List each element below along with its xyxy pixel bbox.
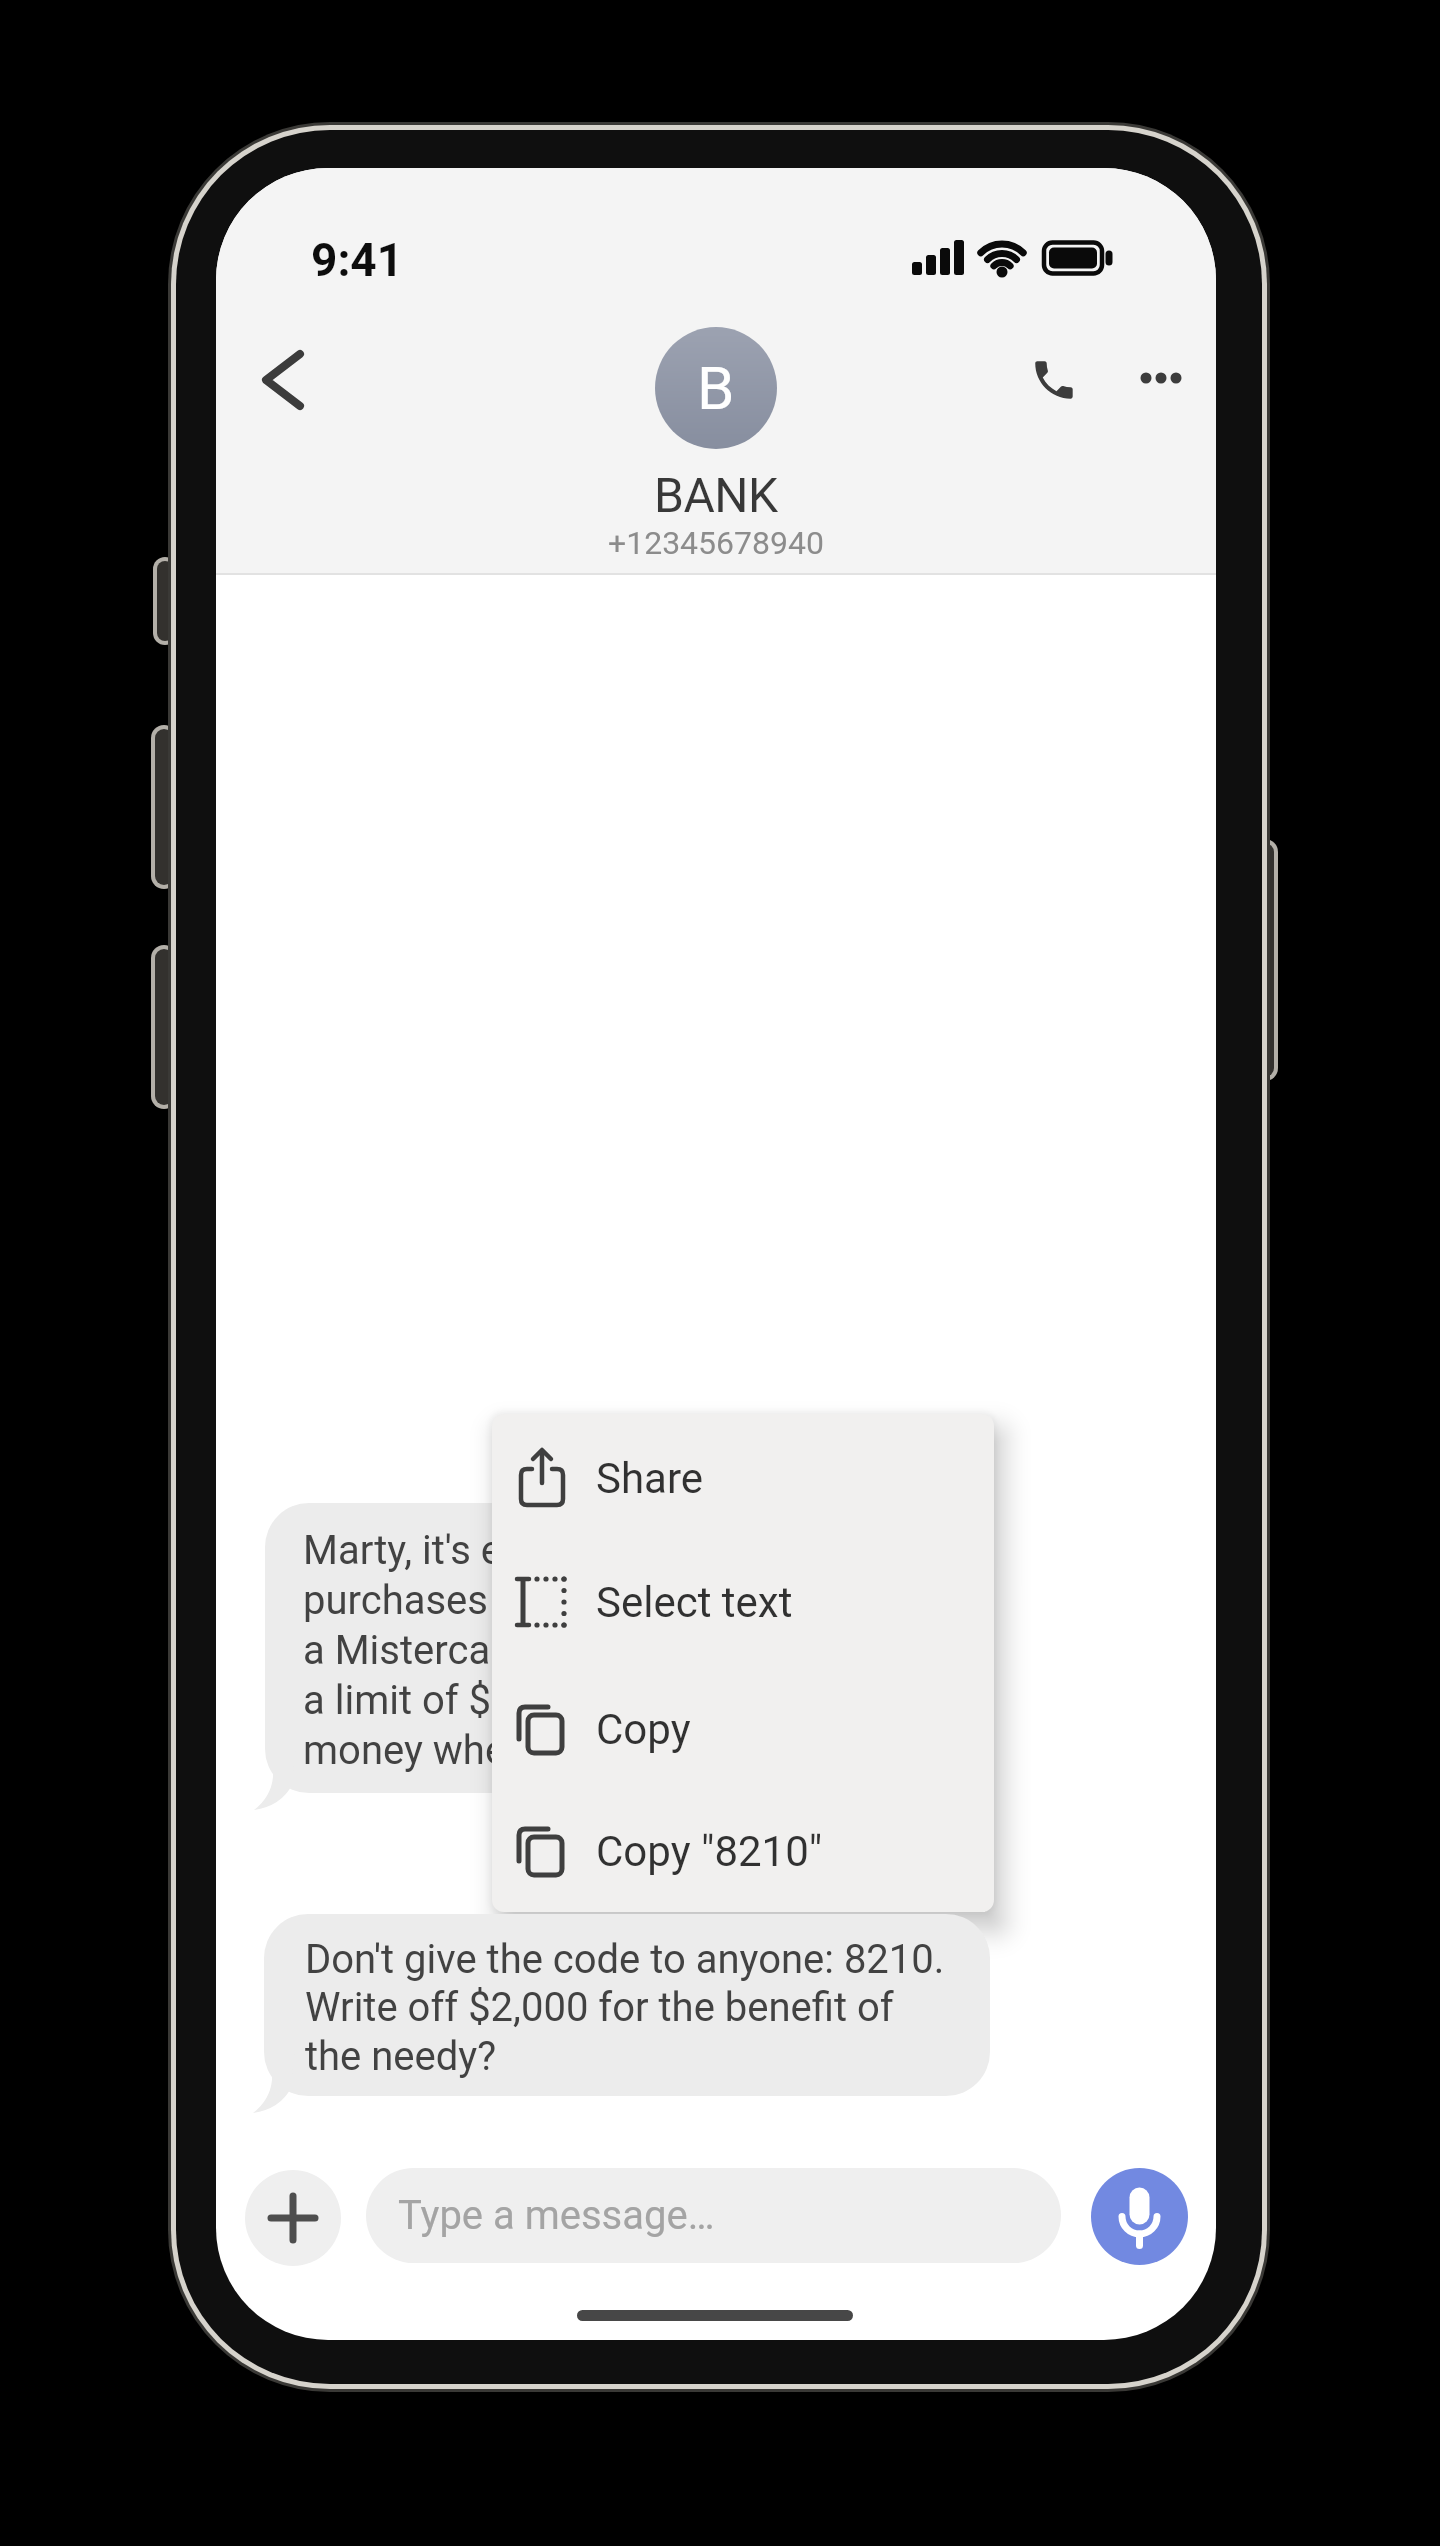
staticText: Type a message… <box>398 2192 715 2239</box>
staticText: purchases with a new <box>303 1577 688 1624</box>
staticText: Don't give the code to anyone: 8210. <box>305 1936 945 1983</box>
staticText: B <box>697 353 735 423</box>
button[interactable]: Select text <box>492 1540 994 1664</box>
staticText: Marty, it's easy to make <box>303 1527 717 1574</box>
button[interactable] <box>1006 333 1101 428</box>
button[interactable]: Copy <box>492 1667 994 1791</box>
button[interactable] <box>236 328 346 438</box>
button[interactable]: B <box>655 327 777 449</box>
button[interactable]: Share <box>492 1416 994 1540</box>
button[interactable] <box>245 2170 341 2266</box>
staticText: Share <box>596 1454 704 1503</box>
staticText: Copy "8210" <box>596 1827 823 1876</box>
staticText: +12345678940 <box>608 524 824 562</box>
staticText: Select text <box>596 1578 793 1627</box>
staticText: Write off $2,000 for the benefit of <box>305 1984 894 2031</box>
staticText: 9:41 <box>311 233 404 283</box>
staticText: Copy <box>596 1705 691 1754</box>
staticText: the needy? <box>305 2033 497 2080</box>
staticText: BANK <box>654 467 778 519</box>
staticText: a limit of $5,000. Get <box>303 1677 671 1724</box>
staticText: money whenever you <box>303 1727 677 1774</box>
button[interactable] <box>1091 2168 1188 2265</box>
button[interactable]: Copy "8210" <box>492 1791 994 1912</box>
staticText: a Mistercard. There is <box>303 1627 688 1674</box>
button[interactable] <box>1121 333 1201 428</box>
button[interactable]: Type a message… <box>366 2168 1061 2263</box>
